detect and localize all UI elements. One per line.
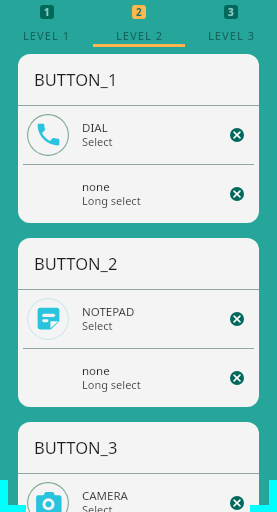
- staticText: Long select: [82, 377, 141, 392]
- staticText: 3: [228, 5, 234, 19]
- button[interactable]: DIAL: [18, 106, 259, 164]
- staticText: Select: [82, 502, 113, 512]
- staticText: BUTTON_2: [34, 252, 118, 274]
- staticText: CAMERA: [82, 488, 128, 504]
- staticText: none: [82, 179, 110, 195]
- button[interactable]: 1: [0, 0, 93, 48]
- button[interactable]: Clear assignment: [230, 496, 244, 510]
- staticText: Long select: [82, 193, 141, 208]
- button[interactable]: Clear assignment: [230, 187, 244, 201]
- button[interactable]: none: [18, 165, 259, 223]
- button[interactable]: NOTEPAD: [18, 290, 259, 348]
- staticText: Select: [82, 134, 113, 149]
- staticText: BUTTON_1: [34, 68, 118, 90]
- staticText: LEVEL 2: [116, 28, 163, 43]
- button[interactable]: Clear assignment: [230, 128, 244, 142]
- staticText: DIAL: [82, 120, 108, 136]
- staticText: LEVEL 3: [208, 28, 255, 43]
- staticText: 1: [44, 5, 50, 19]
- staticText: BUTTON_3: [34, 436, 118, 458]
- button[interactable]: none: [18, 349, 259, 407]
- button[interactable]: Clear assignment: [230, 371, 244, 385]
- button[interactable]: 3: [185, 0, 277, 48]
- staticText: NOTEPAD: [82, 304, 135, 320]
- button[interactable]: 2: [93, 0, 185, 48]
- button[interactable]: Clear assignment: [230, 312, 244, 326]
- staticText: Select: [82, 318, 113, 333]
- staticText: 2: [136, 5, 142, 19]
- button[interactable]: CAMERA: [18, 474, 259, 512]
- staticText: none: [82, 363, 110, 379]
- staticText: LEVEL 1: [23, 28, 70, 43]
